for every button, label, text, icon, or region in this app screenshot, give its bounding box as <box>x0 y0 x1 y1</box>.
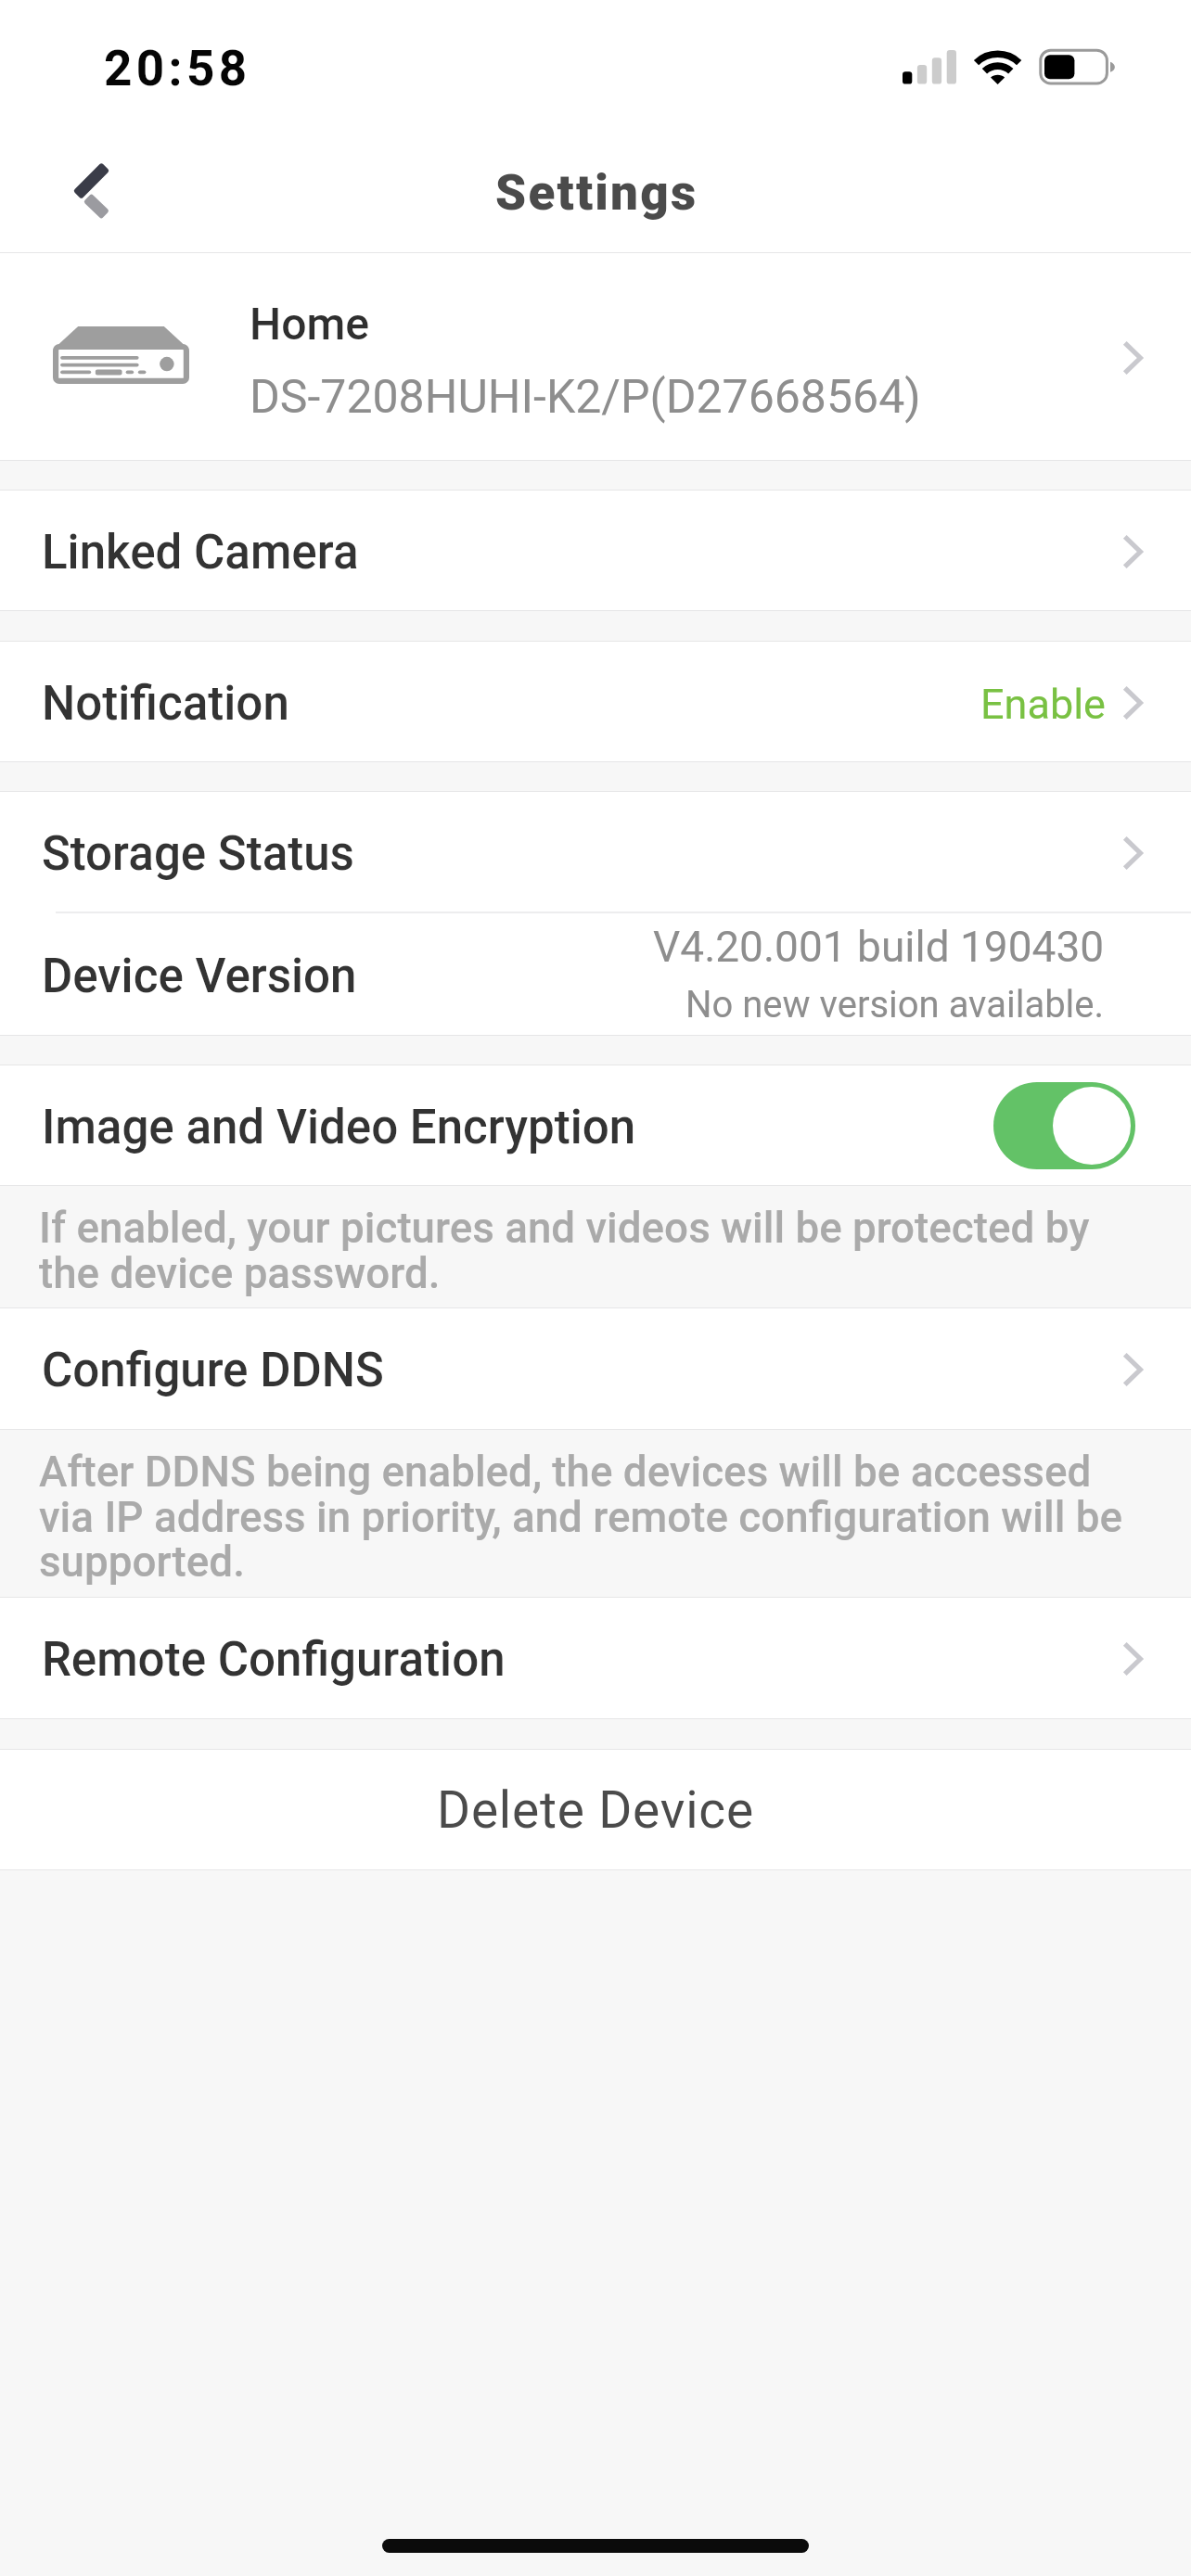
button[interactable]: Delete Device <box>0 1750 1191 1869</box>
staticText: 20:58 <box>104 40 251 97</box>
staticText: Home <box>250 298 369 350</box>
staticText: Enable <box>980 680 1106 729</box>
staticText: No new version available. <box>685 983 1105 1027</box>
button[interactable]: Configure DDNS <box>0 1308 1191 1429</box>
staticText: After DDNS being enabled, the devices wi… <box>39 1447 1145 1588</box>
staticText: Remote Configuration <box>42 1632 506 1688</box>
staticText: Linked Camera <box>42 525 359 580</box>
button[interactable]: Device Version <box>0 913 1191 1035</box>
button[interactable]: Notification <box>0 642 1191 761</box>
button[interactable]: Remote Configuration <box>0 1598 1191 1718</box>
button[interactable]: Image and Video Encryption toggle <box>993 1082 1135 1169</box>
button[interactable]: Linked Camera <box>0 491 1191 610</box>
staticText: Device Version <box>42 949 357 1004</box>
staticText: Delete Device <box>437 1780 754 1840</box>
button[interactable]: Back <box>0 111 158 252</box>
button[interactable]: Home <box>0 253 1191 460</box>
button[interactable]: Storage Status <box>0 792 1191 912</box>
staticText: If enabled, your pictures and videos wil… <box>39 1204 1145 1299</box>
staticText: Notification <box>42 676 289 732</box>
staticText: Storage Status <box>42 826 354 882</box>
staticText: DS-7208HUHI-K2/P(D27668564) <box>250 370 921 425</box>
staticText: V4.20.001 build 190430 <box>653 922 1105 972</box>
staticText: Image and Video Encryption <box>42 1100 636 1155</box>
staticText: Configure DDNS <box>42 1343 384 1398</box>
staticText: Settings <box>495 164 698 222</box>
